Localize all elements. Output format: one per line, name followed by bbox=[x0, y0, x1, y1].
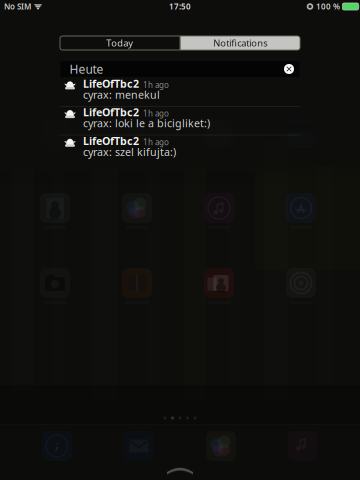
button[interactable]: Clear notifications bbox=[281, 61, 296, 76]
staticText: 1h ago bbox=[143, 137, 169, 147]
button[interactable]: LifeOfTbc2 bbox=[60, 78, 300, 106]
staticText: 100 % bbox=[316, 1, 340, 12]
staticText: 17:50 bbox=[169, 1, 191, 12]
staticText: LifeOfTbc2 bbox=[83, 134, 139, 148]
button[interactable]: LifeOfTbc2 bbox=[60, 107, 300, 135]
staticText: Heute bbox=[69, 61, 103, 77]
button[interactable]: LifeOfTbc2 bbox=[60, 135, 300, 163]
button[interactable]: Today bbox=[60, 36, 179, 50]
staticText: Today bbox=[106, 37, 133, 49]
staticText: 1h ago bbox=[143, 108, 169, 119]
staticText: cyrax: menekul bbox=[83, 87, 160, 102]
staticText: LifeOfTbc2 bbox=[83, 76, 139, 91]
staticText: No SIM bbox=[4, 1, 31, 12]
staticText: LifeOfTbc2 bbox=[83, 105, 139, 119]
staticText: 1h ago bbox=[143, 79, 169, 90]
staticText: Notifications bbox=[213, 37, 267, 49]
button[interactable]: Notifications bbox=[180, 36, 300, 50]
staticText: cyrax: szel kifujta:) bbox=[83, 145, 176, 159]
staticText: cyrax: loki le a bicigliket:) bbox=[83, 116, 210, 130]
